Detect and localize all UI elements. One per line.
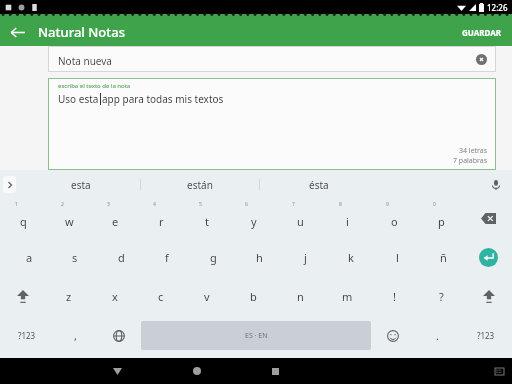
button[interactable]: f [144, 238, 190, 277]
button[interactable]: Clear title [474, 52, 488, 66]
staticText: ? [439, 289, 444, 304]
staticText: 34 letras [459, 146, 488, 156]
staticText: 2 [61, 201, 64, 208]
staticText: n [297, 289, 304, 304]
staticText: u [297, 214, 304, 229]
staticText: p [438, 214, 445, 229]
staticText: 8 [339, 201, 342, 208]
staticText: q [20, 214, 27, 229]
staticText: 5 [199, 201, 202, 208]
button[interactable]: 6 [230, 199, 277, 238]
staticText: están [187, 178, 213, 192]
button[interactable]: , [53, 316, 97, 355]
button[interactable]: 4 [138, 199, 184, 238]
button[interactable]: 9 [371, 199, 418, 238]
staticText: w [65, 214, 74, 229]
button[interactable]: 1 [0, 199, 46, 238]
staticText: z [66, 289, 72, 304]
button[interactable]: d [98, 238, 144, 277]
button[interactable]: 7 [277, 199, 324, 238]
button[interactable]: 5 [184, 199, 230, 238]
button[interactable]: Hide keyboard [78, 358, 157, 384]
button[interactable]: ésta [260, 170, 378, 199]
staticText: 7 [292, 201, 295, 208]
button[interactable]: 3 [92, 199, 138, 238]
button[interactable]: Switch keyboard [488, 360, 510, 382]
staticText: 4 [153, 201, 156, 208]
button[interactable]: ? [418, 277, 465, 316]
staticText: c [158, 289, 164, 304]
staticText: 12:26 [487, 2, 508, 13]
staticText: ñ [440, 250, 447, 265]
button[interactable]: . [415, 316, 459, 355]
staticText: , [74, 328, 77, 343]
button[interactable]: 2 [46, 199, 92, 238]
staticText: 1 [15, 201, 18, 208]
staticText: x [112, 289, 118, 304]
staticText: b [250, 289, 257, 304]
button[interactable]: ?123 [0, 316, 53, 355]
staticText: ES · EN [245, 331, 268, 341]
button[interactable]: ñ [420, 238, 466, 277]
button[interactable]: Nota nueva [48, 46, 496, 72]
button[interactable]: m [324, 277, 371, 316]
staticText: y [251, 214, 257, 229]
staticText: 7 palabras [453, 156, 488, 166]
staticText: d [118, 250, 125, 265]
staticText: 6 [245, 201, 248, 208]
staticText: ?123 [477, 330, 495, 341]
button[interactable]: Emoji [371, 316, 415, 355]
button[interactable]: b [230, 277, 277, 316]
button[interactable]: s [52, 238, 98, 277]
staticText: app para todas mis textos [102, 92, 224, 106]
staticText: Natural Notas [38, 23, 125, 41]
staticText: l [396, 250, 399, 265]
button[interactable]: Backspace [465, 199, 512, 238]
button[interactable]: Enter [466, 238, 510, 277]
button[interactable]: c [138, 277, 184, 316]
button[interactable]: ! [371, 277, 418, 316]
button[interactable]: z [46, 277, 92, 316]
button[interactable]: escriba el texto de la nota [48, 78, 496, 170]
button[interactable]: n [277, 277, 324, 316]
staticText: e [112, 214, 119, 229]
button[interactable]: Back [0, 18, 34, 46]
button[interactable]: Home [157, 358, 236, 384]
staticText: GUARDAR [462, 27, 502, 38]
staticText: m [342, 289, 353, 304]
button[interactable]: Shift [465, 277, 512, 316]
button[interactable]: Change language [97, 316, 141, 355]
button[interactable]: GUARDAR [452, 21, 512, 44]
button[interactable]: Voice input [488, 177, 504, 193]
staticText: 3 [107, 201, 110, 208]
staticText: a [26, 250, 33, 265]
button[interactable]: x [92, 277, 138, 316]
button[interactable]: k [328, 238, 374, 277]
button[interactable]: esta [22, 170, 140, 199]
button[interactable]: h [236, 238, 282, 277]
button[interactable]: Recents [236, 358, 315, 384]
button[interactable]: j [282, 238, 328, 277]
staticText: r [159, 214, 164, 229]
staticText: ?123 [18, 330, 36, 341]
button[interactable]: ES · EN [141, 321, 371, 350]
staticText: f [165, 250, 169, 265]
button[interactable]: ?123 [459, 316, 512, 355]
staticText: t [205, 214, 209, 229]
staticText: Uso esta [58, 92, 99, 106]
button[interactable]: v [184, 277, 230, 316]
button[interactable]: están [141, 170, 259, 199]
button[interactable]: a [6, 238, 52, 277]
button[interactable]: 0 [418, 199, 465, 238]
staticText: 9 [386, 201, 389, 208]
staticText: j [304, 250, 307, 265]
button[interactable]: More suggestions [3, 176, 16, 193]
button[interactable]: l [374, 238, 420, 277]
staticText: k [348, 250, 354, 265]
staticText: v [204, 289, 210, 304]
staticText: . [436, 328, 439, 343]
button[interactable]: g [190, 238, 236, 277]
button[interactable]: Shift [0, 277, 46, 316]
staticText: g [210, 250, 217, 265]
button[interactable]: 8 [324, 199, 371, 238]
